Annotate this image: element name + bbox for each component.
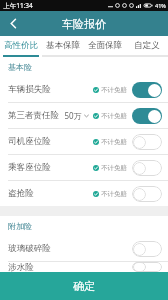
staticText: 全面保障 <box>88 40 122 51</box>
button[interactable]: 自定义 <box>126 36 168 55</box>
button[interactable]: 基本保障 <box>42 36 84 55</box>
button[interactable]: Off <box>132 186 162 202</box>
button[interactable]: 高性价比 <box>0 36 42 55</box>
staticText: 不计免赔 <box>101 86 127 94</box>
staticText: 不计免赔 <box>101 112 127 120</box>
staticText: 不计免赔 <box>101 164 127 172</box>
staticText: 上午11:34 <box>3 1 33 10</box>
staticText: 41% <box>155 2 166 9</box>
staticText: 不计免赔 <box>101 138 127 146</box>
staticText: 乘客座位险 <box>8 162 51 173</box>
staticText: 附加险 <box>8 221 32 231</box>
button[interactable]: On <box>132 108 162 124</box>
staticText: 基本保障 <box>46 40 80 51</box>
staticText: 司机座位险 <box>8 136 51 147</box>
staticText: 50万 <box>64 110 82 121</box>
staticText: 涉水险 <box>8 262 34 272</box>
staticText: 盗抢险 <box>8 188 34 199</box>
button[interactable]: 确定 <box>0 272 168 300</box>
button[interactable]: Off <box>132 160 162 176</box>
staticText: 自定义 <box>134 40 160 51</box>
button[interactable]: 盗抢险 <box>0 181 168 206</box>
button[interactable]: Back <box>0 11 26 36</box>
button[interactable]: 玻璃破碎险 <box>0 236 168 261</box>
button[interactable]: On <box>132 82 162 98</box>
staticText: 车险报价 <box>62 17 106 31</box>
staticText: 基本险 <box>8 62 32 72</box>
staticText: 确定 <box>73 279 95 293</box>
button[interactable]: Off <box>132 134 162 150</box>
button[interactable]: 司机座位险 <box>0 129 168 154</box>
staticText: 车辆损失险 <box>8 84 51 95</box>
staticText: 高性价比 <box>4 40 38 51</box>
button[interactable]: 乘客座位险 <box>0 155 168 180</box>
button[interactable]: 车辆损失险 <box>0 77 168 102</box>
button[interactable]: 50万 <box>64 110 89 121</box>
button[interactable]: Off <box>132 262 162 272</box>
staticText: 不计免赔 <box>101 190 127 198</box>
button[interactable]: 第三者责任险 <box>0 103 168 128</box>
staticText: 玻璃破碎险 <box>8 243 51 254</box>
staticText: 第三者责任险 <box>8 110 59 121</box>
button[interactable]: Off <box>132 241 162 257</box>
button[interactable]: 全面保障 <box>84 36 126 55</box>
button[interactable]: 涉水险 <box>0 262 168 272</box>
